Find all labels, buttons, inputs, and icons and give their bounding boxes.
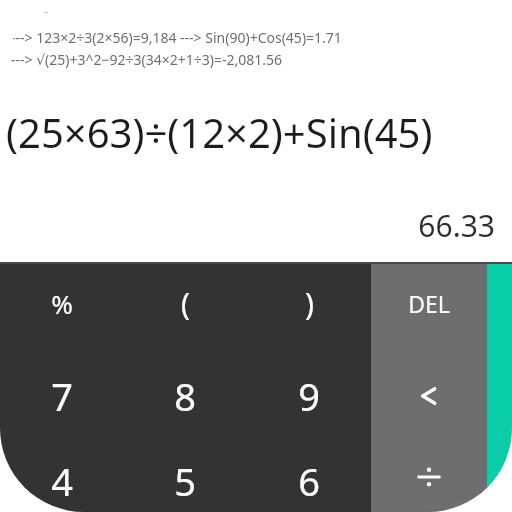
button[interactable]: DEL [371, 264, 487, 342]
button[interactable]: 8 [123, 342, 247, 449]
staticText: - [44, 2, 49, 20]
staticText: 66.33 [0, 205, 495, 246]
button[interactable]: 5 [123, 449, 247, 512]
button[interactable]: 6 [247, 449, 371, 512]
button[interactable]: 4 [0, 449, 123, 512]
staticText: 4 [51, 455, 73, 507]
staticText: ( [181, 283, 190, 324]
staticText: DEL [408, 288, 450, 319]
staticText: ) [305, 283, 314, 324]
button[interactable]: Backspace [371, 342, 487, 449]
button[interactable]: 7 [0, 342, 123, 449]
staticText: (25×63)÷(12×2)+Sin(45) [6, 105, 510, 159]
staticText: % [51, 286, 73, 321]
button[interactable]: % [0, 264, 123, 342]
button[interactable]: ) [247, 264, 371, 342]
staticText: 7 [51, 370, 73, 422]
button[interactable]: ( [123, 264, 247, 342]
staticText: ---> √(25)+3^2−92÷3(34×2+1÷3)=-2,081.56 [11, 50, 283, 69]
button[interactable]: Divide [371, 449, 487, 512]
staticText: 6 [298, 455, 320, 507]
button[interactable]: Equals [487, 264, 512, 512]
staticText: ---> 123×2÷3(2×56)=9,184 ---> Sin(90)+Co… [11, 28, 342, 47]
button[interactable]: 9 [247, 342, 371, 449]
staticText: 8 [174, 370, 196, 422]
staticText: 5 [174, 455, 196, 507]
staticText: 9 [298, 370, 320, 422]
